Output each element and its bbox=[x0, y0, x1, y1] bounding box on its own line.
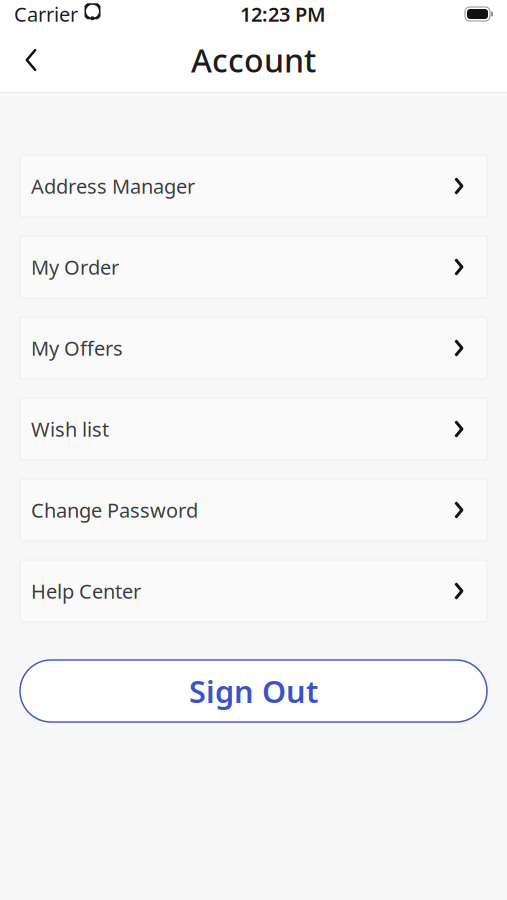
button[interactable]: Wish list bbox=[20, 398, 487, 460]
button[interactable]: Back bbox=[8, 38, 54, 82]
button[interactable]: Sign Out bbox=[20, 660, 487, 722]
staticText: Carrier bbox=[14, 1, 78, 27]
staticText: Change Password bbox=[31, 497, 198, 523]
staticText: Address Manager bbox=[31, 173, 195, 199]
staticText: My Order bbox=[31, 254, 119, 280]
button[interactable]: Address Manager bbox=[20, 155, 487, 217]
staticText: 12:23 PM bbox=[240, 1, 326, 27]
staticText: Sign Out bbox=[189, 671, 318, 711]
staticText: Help Center bbox=[31, 578, 141, 604]
button[interactable]: My Offers bbox=[20, 317, 487, 379]
staticText: Account bbox=[191, 39, 316, 81]
staticText: My Offers bbox=[31, 335, 123, 361]
button[interactable]: Change Password bbox=[20, 479, 487, 541]
button[interactable]: My Order bbox=[20, 236, 487, 298]
button[interactable]: Help Center bbox=[20, 560, 487, 622]
staticText: Wish list bbox=[31, 416, 109, 442]
